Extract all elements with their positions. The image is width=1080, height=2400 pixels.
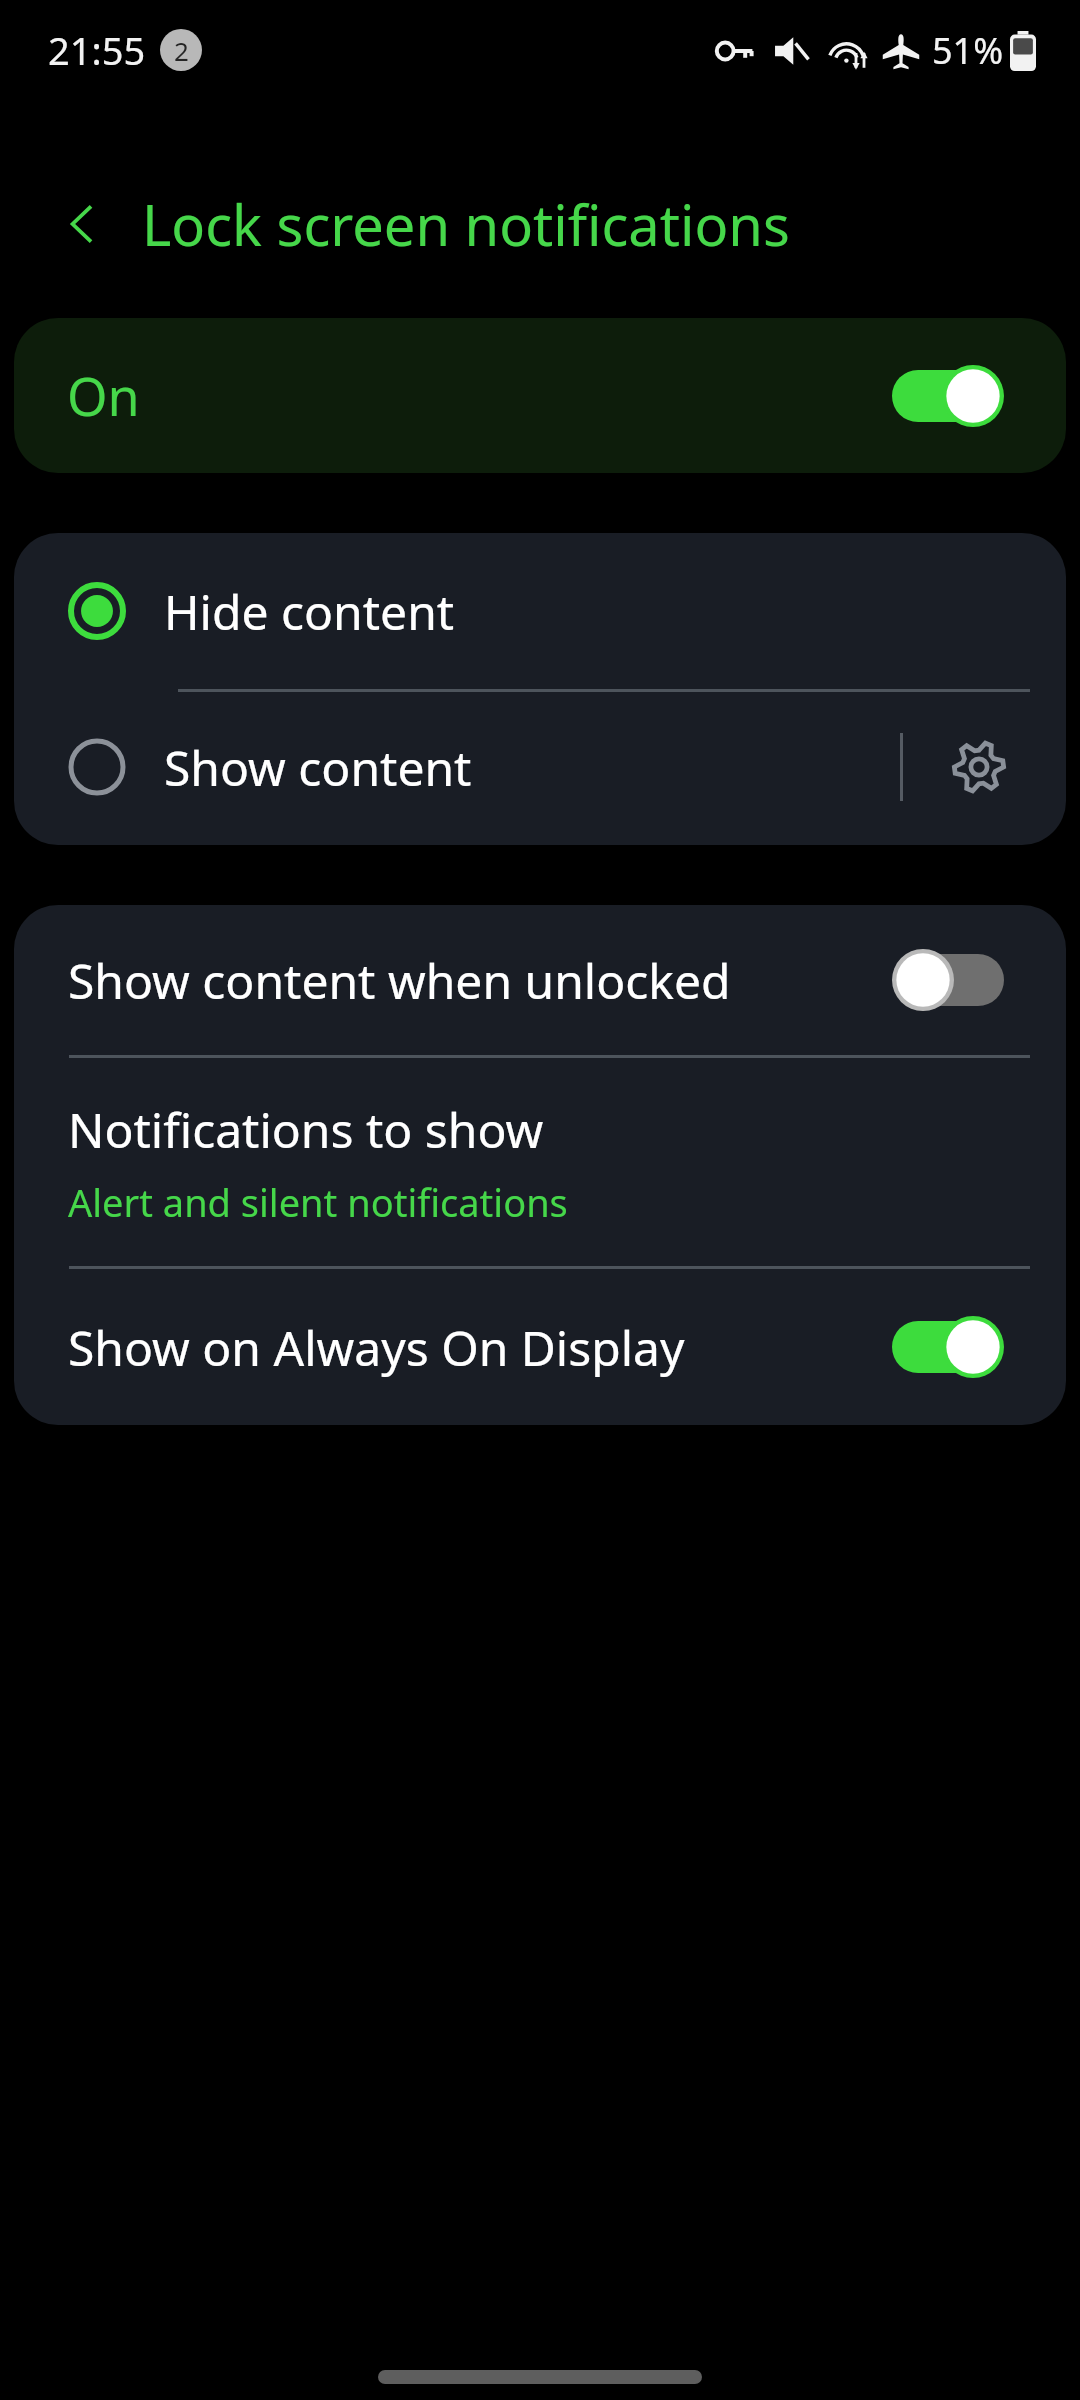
button[interactable]: Hide content xyxy=(14,533,1066,689)
button[interactable]: Back xyxy=(52,192,116,256)
button[interactable]: Settings xyxy=(934,722,1024,812)
staticText: 51% xyxy=(932,26,1004,75)
button[interactable]: Toggle on xyxy=(892,365,1004,427)
staticText: Show content xyxy=(164,735,472,800)
staticText: Lock screen notifications xyxy=(142,186,790,262)
staticText: Show content when unlocked xyxy=(68,948,892,1013)
button[interactable]: Toggle on xyxy=(892,1316,1004,1378)
button[interactable]: Show content when unlocked xyxy=(14,905,1066,1055)
staticText: Show on Always On Display xyxy=(68,1315,892,1380)
button[interactable]: Show on Always On Display xyxy=(14,1269,1066,1425)
staticText: Notifications to show xyxy=(68,1097,544,1162)
staticText: On xyxy=(67,360,140,431)
staticText: 21:55 xyxy=(48,24,146,76)
staticText: 2 xyxy=(174,33,189,68)
button[interactable]: Notifications to show xyxy=(14,1058,1066,1266)
staticText: Alert and silent notifications xyxy=(68,1176,568,1228)
button[interactable]: On xyxy=(14,318,1066,473)
button[interactable]: Show content xyxy=(14,689,1066,845)
staticText: Hide content xyxy=(164,579,455,644)
button[interactable]: Toggle off xyxy=(892,949,1004,1011)
